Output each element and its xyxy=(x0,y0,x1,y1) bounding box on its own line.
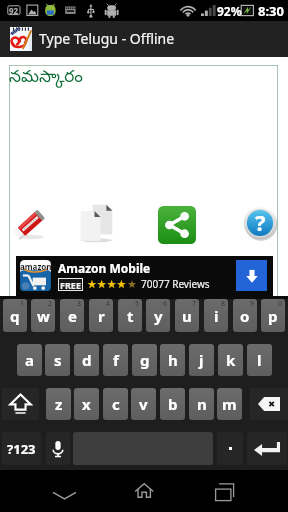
staticText: Type Telugu - Offline xyxy=(39,29,175,48)
staticText: m xyxy=(222,394,237,414)
staticText: 5 xyxy=(135,299,140,309)
staticText: 92% xyxy=(217,3,242,19)
button[interactable]: k xyxy=(218,344,243,376)
button[interactable]: o xyxy=(233,299,257,332)
staticText: 4 xyxy=(106,299,111,309)
staticText: f xyxy=(113,350,119,370)
staticText: h xyxy=(168,350,178,370)
button[interactable]: d xyxy=(74,344,99,376)
button[interactable]: f xyxy=(103,344,128,376)
button[interactable]: q xyxy=(3,299,27,332)
staticText: b xyxy=(168,394,178,414)
button[interactable]: Voice input xyxy=(46,432,70,465)
button[interactable]: Period xyxy=(217,432,243,465)
button[interactable]: a xyxy=(17,344,42,376)
staticText: l xyxy=(257,350,262,370)
staticText: 6 xyxy=(163,299,168,309)
button[interactable]: t xyxy=(118,299,142,332)
button[interactable]: Help xyxy=(243,206,277,240)
staticText: ? xyxy=(255,207,266,237)
button[interactable]: b xyxy=(160,388,185,420)
button[interactable]: c xyxy=(103,388,128,420)
staticText: t xyxy=(127,306,134,326)
staticText: k xyxy=(226,350,236,370)
button[interactable]: z xyxy=(46,388,71,420)
staticText: s xyxy=(54,350,62,370)
staticText: c xyxy=(112,394,120,414)
button[interactable]: Symbols xyxy=(2,432,41,465)
staticText: 8 xyxy=(221,299,226,309)
button[interactable]: Recents xyxy=(203,474,245,512)
button[interactable]: Share xyxy=(158,206,196,244)
staticText: o xyxy=(240,306,250,326)
staticText: q xyxy=(10,306,20,326)
button[interactable]: Home xyxy=(123,474,165,512)
staticText: 92 xyxy=(9,5,19,16)
staticText: Amazon Mobile xyxy=(58,260,151,276)
button[interactable]: m xyxy=(217,388,242,420)
staticText: నమస్కారం xyxy=(9,67,83,90)
staticText: p xyxy=(268,306,278,326)
button[interactable]: p xyxy=(261,299,285,332)
button[interactable]: h xyxy=(160,344,185,376)
button[interactable]: y xyxy=(146,299,170,332)
button[interactable]: v xyxy=(131,388,156,420)
staticText: j xyxy=(199,350,204,370)
staticText: 8:30 xyxy=(258,2,284,20)
button[interactable]: n xyxy=(189,388,214,420)
button[interactable]: u xyxy=(175,299,199,332)
staticText: amazon xyxy=(20,261,52,272)
staticText: d xyxy=(82,350,92,370)
staticText: 7 xyxy=(192,299,197,309)
staticText: 1 xyxy=(20,299,25,309)
staticText: u xyxy=(182,306,192,326)
button[interactable]: e xyxy=(60,299,84,332)
staticText: i xyxy=(214,306,219,326)
button[interactable]: Back xyxy=(44,474,86,512)
button[interactable]: g xyxy=(132,344,157,376)
staticText: ★ xyxy=(127,278,137,291)
button[interactable]: Clear xyxy=(13,210,45,241)
button[interactable]: j xyxy=(189,344,214,376)
staticText: y xyxy=(154,306,163,326)
staticText: r xyxy=(98,306,105,326)
staticText: FREE xyxy=(60,279,81,291)
staticText: w xyxy=(37,306,50,326)
staticText: 70077 Reviews xyxy=(141,277,210,291)
button[interactable]: Enter xyxy=(247,432,287,465)
staticText: n xyxy=(197,394,207,414)
button[interactable]: Shift xyxy=(2,388,39,420)
button[interactable]: Copy xyxy=(80,204,113,243)
button[interactable]: w xyxy=(31,299,55,332)
staticText: ★★★★ xyxy=(87,278,127,291)
staticText: e xyxy=(68,306,77,326)
button[interactable]: i xyxy=(204,299,228,332)
staticText: x xyxy=(82,394,91,414)
staticText: 2 xyxy=(48,299,53,309)
staticText: 0 xyxy=(278,299,283,309)
button[interactable]: amazon xyxy=(16,256,273,296)
staticText: g xyxy=(140,350,150,370)
staticText: v xyxy=(139,394,148,414)
staticText: 9 xyxy=(250,299,255,309)
button[interactable]: Backspace xyxy=(250,388,288,420)
button[interactable]: r xyxy=(89,299,113,332)
staticText: a xyxy=(25,350,34,370)
staticText: z xyxy=(55,394,63,414)
button[interactable]: x xyxy=(74,388,99,420)
staticText: ?123 xyxy=(7,440,36,458)
staticText: 3 xyxy=(77,299,82,309)
button[interactable]: s xyxy=(45,344,70,376)
button[interactable]: l xyxy=(247,344,272,376)
